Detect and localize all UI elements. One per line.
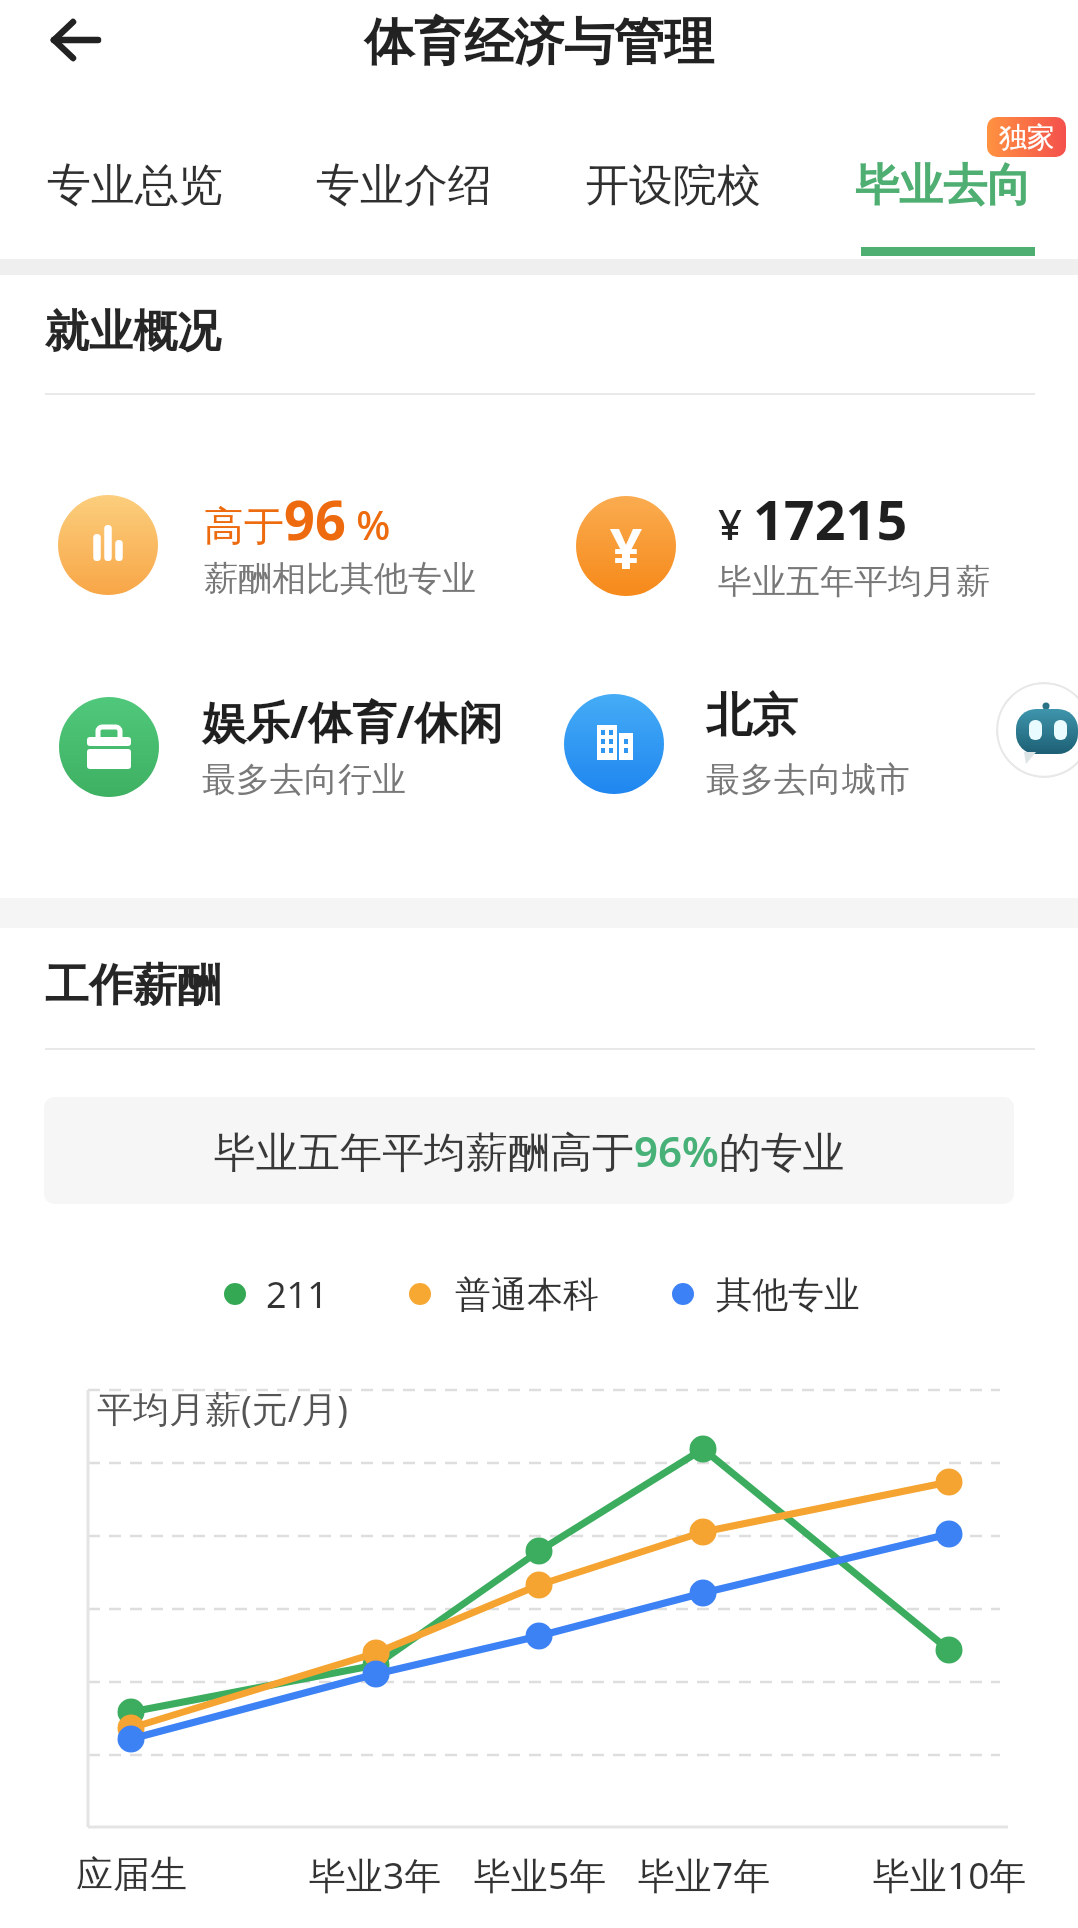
staticText: 娱乐/体育/休闲: [202, 691, 503, 751]
staticText: 毕业去向: [855, 158, 1031, 213]
staticText: ¥: [610, 509, 643, 585]
staticText: 普通本科: [455, 1272, 599, 1317]
staticText: 就业概况: [45, 304, 221, 359]
staticText: 其他专业: [716, 1272, 860, 1317]
button[interactable]: 专业介绍: [269, 112, 538, 258]
staticText: 薪酬相比其他专业: [204, 557, 476, 600]
button[interactable]: 开设院校: [538, 112, 808, 258]
staticText: 毕业7年: [638, 1849, 771, 1900]
staticText: 应届生: [76, 1851, 187, 1898]
staticText: 最多去向城市: [706, 758, 910, 801]
button[interactable]: [996, 682, 1078, 778]
staticText: 北京: [706, 687, 798, 745]
staticText: 平均月薪(元/月): [97, 1384, 348, 1433]
staticText: 高于96 %: [204, 482, 391, 556]
button[interactable]: 毕业去向: [808, 112, 1078, 258]
staticText: 毕业3年: [309, 1849, 442, 1900]
staticText: 毕业10年: [873, 1849, 1027, 1900]
staticText: ¥ 17215: [718, 482, 908, 556]
staticText: 独家: [999, 120, 1055, 155]
staticText: 专业总览: [47, 158, 223, 213]
staticText: 211: [266, 1270, 328, 1319]
staticText: 最多去向行业: [202, 758, 406, 801]
staticText: 开设院校: [585, 158, 761, 213]
staticText: 毕业五年平均月薪: [718, 560, 990, 603]
staticText: 毕业5年: [474, 1849, 607, 1900]
staticText: 体育经济与管理: [364, 11, 714, 74]
button[interactable]: [28, 4, 124, 80]
staticText: 工作薪酬: [45, 958, 221, 1013]
button[interactable]: 专业总览: [0, 112, 269, 258]
staticText: 专业介绍: [316, 158, 492, 213]
staticText: 毕业五年平均薪酬高于96%的专业: [214, 1122, 845, 1179]
